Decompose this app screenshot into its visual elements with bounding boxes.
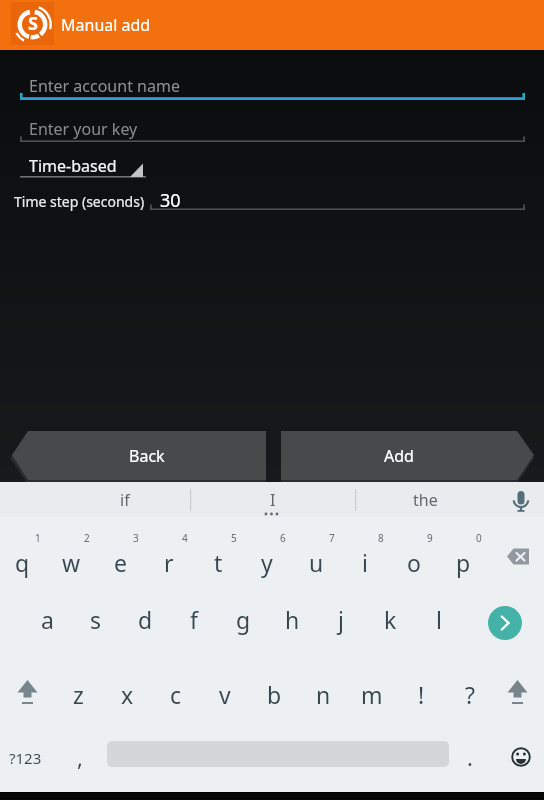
button[interactable]: if (60, 482, 190, 517)
staticText: j (338, 604, 344, 635)
staticText: 9 (427, 531, 433, 545)
button[interactable] (201, 655, 249, 713)
button[interactable] (366, 580, 414, 638)
staticText: t (214, 547, 223, 578)
button[interactable]: S (11, 2, 54, 45)
staticText: p (456, 547, 471, 578)
staticText: . (467, 742, 473, 772)
button[interactable] (194, 522, 242, 580)
staticText: Back (129, 445, 165, 467)
button[interactable] (505, 485, 537, 515)
staticText: u (309, 547, 324, 578)
button[interactable] (0, 522, 46, 580)
staticText: z (73, 679, 84, 710)
staticText: the (413, 489, 438, 511)
staticText: if (120, 489, 130, 511)
button[interactable] (152, 655, 200, 713)
staticText: 3 (133, 531, 139, 545)
button[interactable] (317, 580, 365, 638)
button[interactable]: I (200, 482, 345, 517)
staticText: w (62, 547, 81, 578)
button[interactable] (243, 522, 291, 580)
button[interactable] (494, 522, 544, 580)
button[interactable]: the (360, 482, 490, 517)
button[interactable] (72, 580, 120, 638)
staticText: m (361, 679, 383, 710)
staticText: q (15, 547, 30, 578)
staticText: 7 (329, 531, 335, 545)
button[interactable] (250, 655, 298, 713)
button[interactable] (502, 660, 533, 710)
staticText: Add (384, 445, 414, 467)
staticText: 30 (160, 188, 181, 213)
staticText: i (362, 547, 368, 578)
staticText: c (170, 679, 182, 710)
button[interactable] (439, 522, 487, 580)
button[interactable] (299, 655, 347, 713)
staticText: f (190, 604, 198, 635)
button[interactable] (341, 522, 389, 580)
staticText: 0 (476, 531, 482, 545)
button[interactable] (488, 606, 522, 640)
staticText: v (219, 679, 231, 710)
staticText: b (267, 679, 282, 710)
button[interactable] (20, 150, 146, 178)
button[interactable] (415, 580, 463, 638)
staticText: r (164, 547, 174, 578)
button[interactable]: Add (272, 428, 544, 484)
staticText: d (138, 604, 153, 635)
staticText: 5 (231, 531, 237, 545)
staticText: k (384, 604, 397, 635)
button[interactable] (397, 655, 445, 713)
staticText: a (41, 604, 54, 635)
staticText: e (114, 547, 127, 578)
staticText: 4 (182, 531, 188, 545)
button[interactable] (219, 580, 267, 638)
button[interactable] (170, 580, 218, 638)
staticText: g (236, 604, 251, 635)
button[interactable] (121, 580, 169, 638)
button[interactable] (348, 655, 396, 713)
button[interactable] (56, 732, 102, 784)
button[interactable] (20, 66, 525, 102)
staticText: I (270, 489, 276, 511)
button[interactable] (150, 185, 525, 211)
button[interactable]: ?123 (2, 732, 48, 784)
staticText: h (285, 604, 300, 635)
button[interactable] (23, 580, 71, 638)
button[interactable]: Back (0, 428, 272, 484)
staticText: Manual add (61, 14, 151, 36)
button[interactable] (503, 740, 539, 774)
staticText: 2 (84, 531, 90, 545)
staticText: Time step (seconds) (14, 192, 145, 211)
staticText: n (316, 679, 331, 710)
button[interactable] (268, 580, 316, 638)
button[interactable] (446, 655, 494, 713)
staticText: o (407, 547, 421, 578)
staticText: 6 (280, 531, 286, 545)
staticText: Time-based (29, 155, 117, 177)
button[interactable] (96, 522, 144, 580)
button[interactable] (54, 655, 102, 713)
staticText: x (121, 679, 134, 710)
button[interactable] (20, 110, 525, 143)
button[interactable] (12, 660, 43, 710)
staticText: l (436, 604, 442, 635)
button[interactable] (292, 522, 340, 580)
staticText: Enter account name (29, 75, 180, 97)
staticText: , (77, 742, 83, 772)
button[interactable] (103, 655, 151, 713)
button[interactable] (145, 522, 193, 580)
button[interactable] (390, 522, 438, 580)
staticText: y (261, 547, 273, 578)
staticText: ! (418, 679, 425, 710)
staticText: S (28, 11, 38, 36)
staticText: ? (465, 679, 475, 710)
staticText: s (90, 604, 102, 635)
staticText: 8 (378, 531, 384, 545)
button[interactable] (47, 522, 95, 580)
staticText: 1 (35, 531, 41, 545)
staticText: ?123 (9, 748, 42, 768)
button[interactable] (458, 732, 488, 784)
